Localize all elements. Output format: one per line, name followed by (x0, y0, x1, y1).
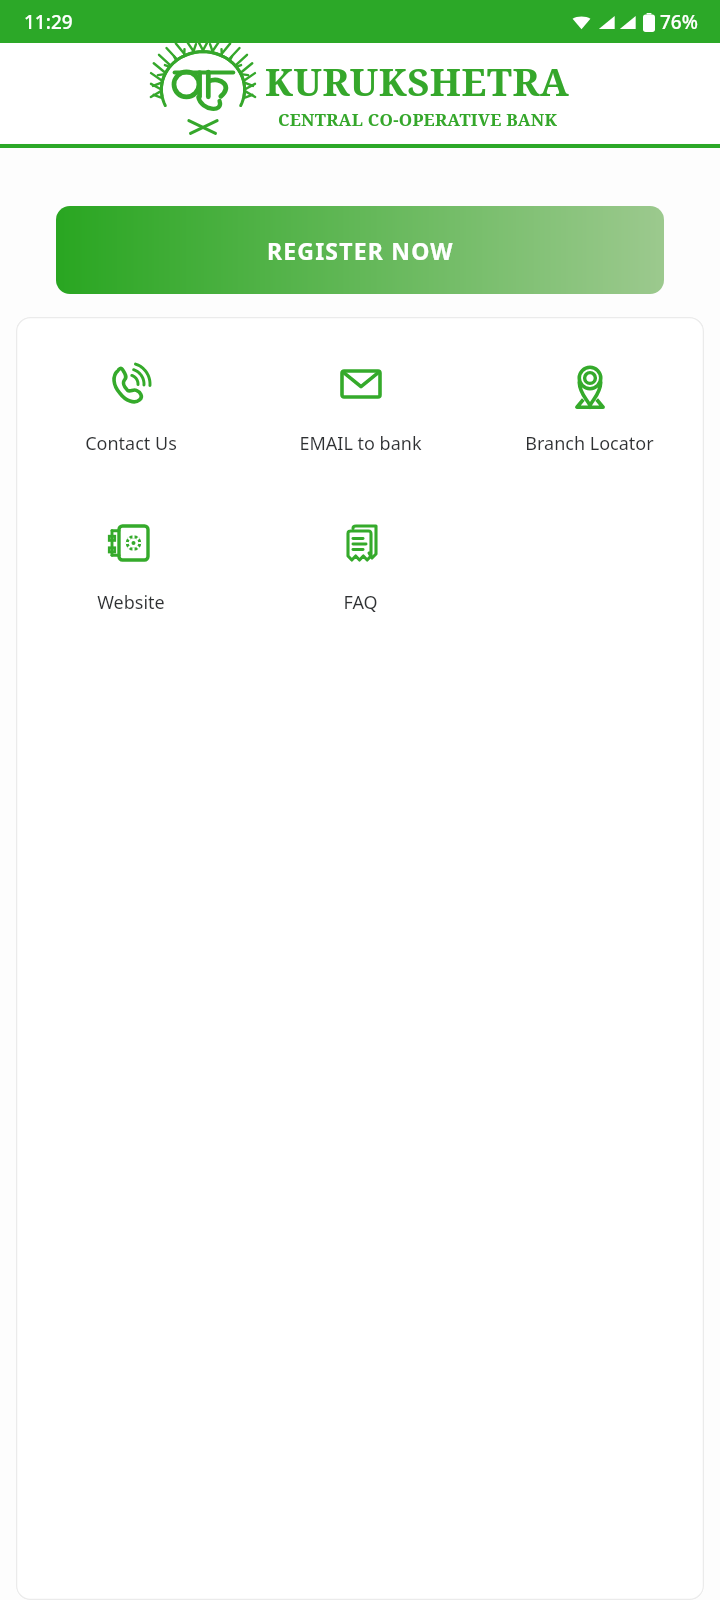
button[interactable]: Contact Us (16, 357, 246, 458)
button[interactable]: EMAIL to bank (246, 357, 475, 458)
button[interactable]: FAQ (246, 516, 475, 617)
staticText: REGISTER NOW (267, 235, 454, 266)
staticText: EMAIL to bank (299, 431, 422, 456)
staticText: Contact Us (85, 431, 177, 456)
staticText: Branch Locator (525, 431, 654, 456)
button[interactable]: Branch Locator (475, 357, 704, 458)
staticText: Website (97, 590, 165, 615)
staticText: KURUKSHETRA (265, 55, 570, 107)
staticText: CENTRAL CO-OPERATIVE BANK (278, 108, 558, 131)
staticText: 76% (660, 9, 698, 35)
staticText: FAQ (343, 590, 378, 615)
button[interactable]: Website (16, 516, 246, 617)
button[interactable]: REGISTER NOW (56, 206, 664, 294)
staticText: 11:29 (24, 9, 73, 35)
